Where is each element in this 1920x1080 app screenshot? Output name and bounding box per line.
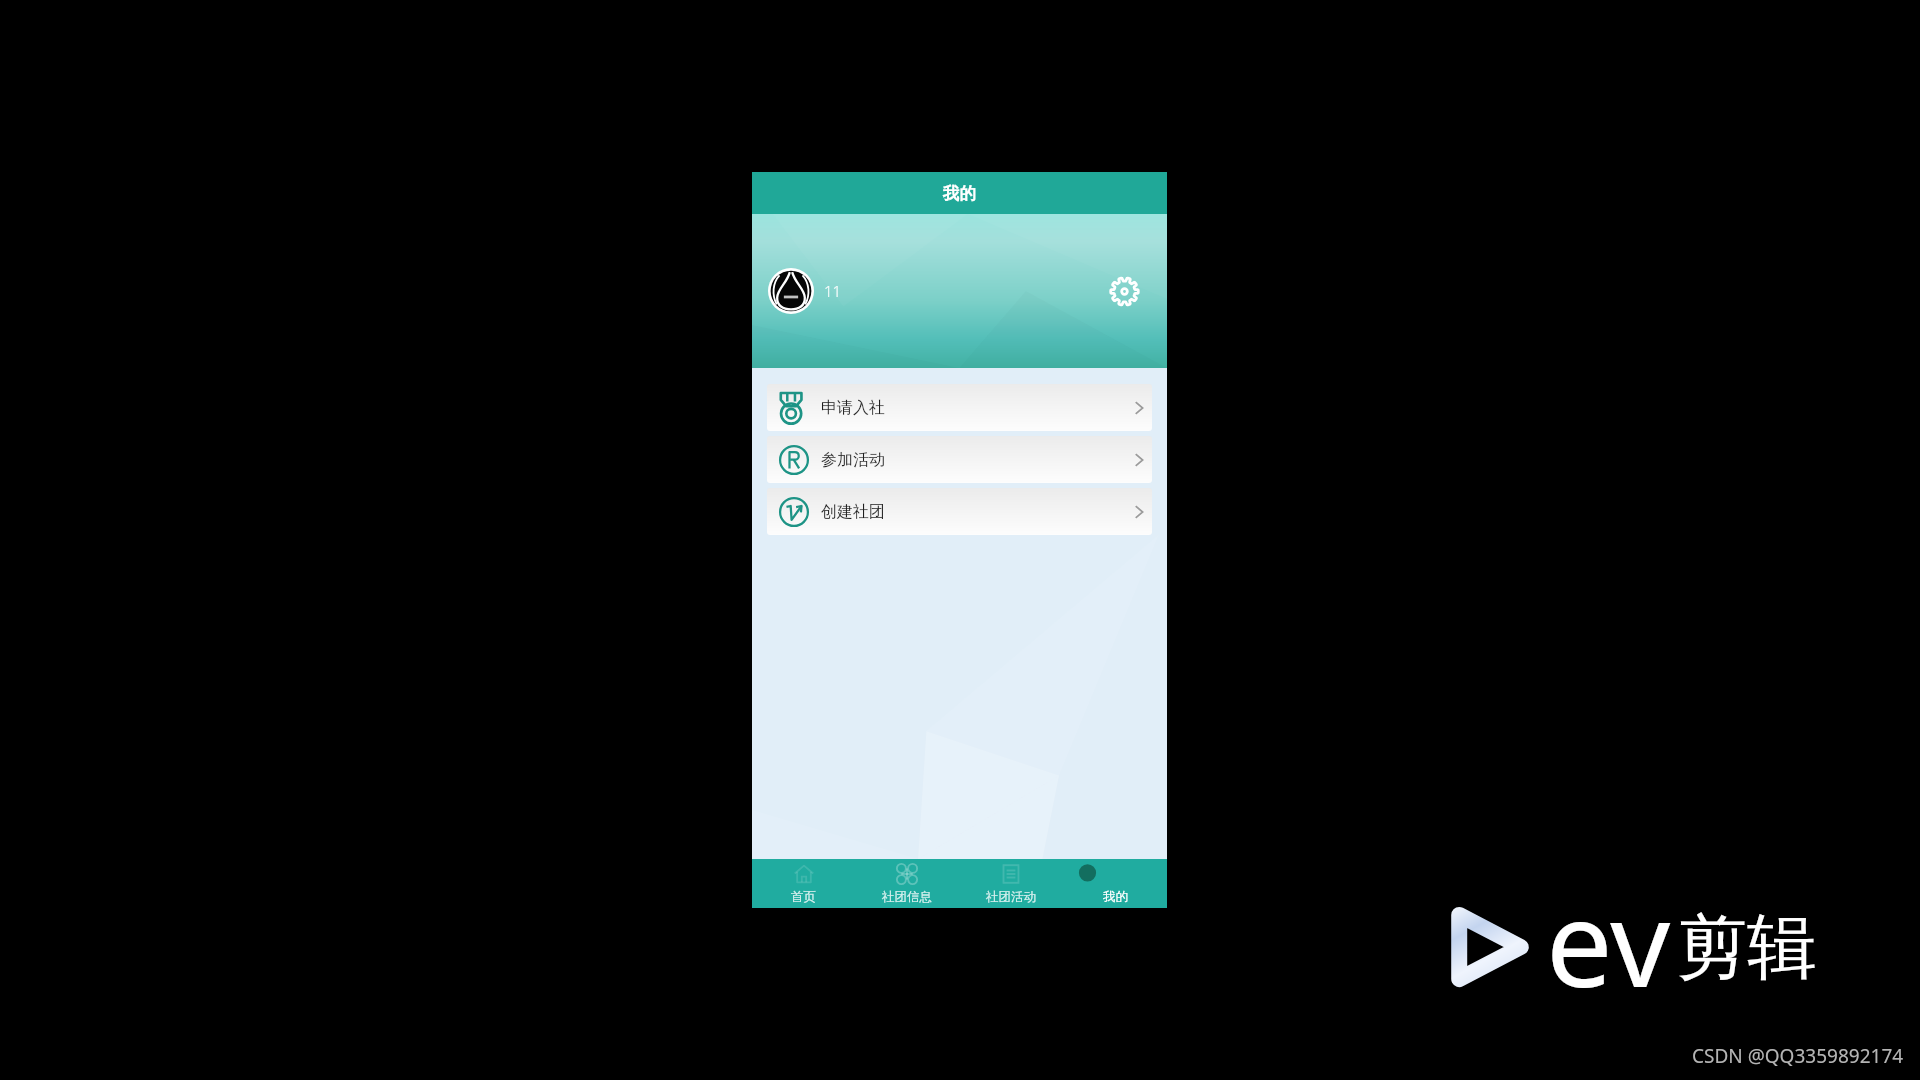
button[interactable]: 我的	[1063, 859, 1167, 908]
staticText: 我的	[943, 183, 976, 204]
staticText: 11	[824, 281, 842, 301]
staticText: 创建社团	[821, 502, 885, 522]
staticText: CSDN @QQ3359892174	[1692, 1043, 1904, 1069]
staticText: 首页	[791, 889, 816, 905]
staticText: 我的	[1103, 889, 1128, 905]
button[interactable]: 创建社团	[767, 488, 1152, 535]
button[interactable]: 社团活动	[959, 859, 1063, 908]
button[interactable]: Settings	[1102, 269, 1146, 313]
button[interactable]: 社团信息	[855, 859, 959, 908]
staticText: 申请入社	[821, 398, 885, 418]
staticText: 社团信息	[882, 889, 932, 905]
staticText: 参加活动	[821, 450, 885, 470]
staticText: ev	[1546, 861, 1671, 1022]
button[interactable]: 首页	[752, 859, 855, 908]
button[interactable]: 参加活动	[767, 436, 1152, 483]
button[interactable]: 申请入社	[767, 384, 1152, 431]
staticText: 剪辑	[1677, 904, 1817, 992]
staticText: 社团活动	[986, 889, 1036, 905]
